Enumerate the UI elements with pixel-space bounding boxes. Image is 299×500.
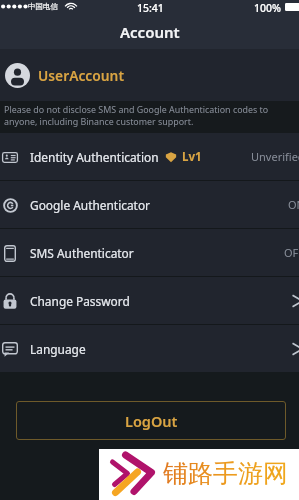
button[interactable]: Change Password [0,277,299,324]
button[interactable]: UserAccount [0,49,299,101]
staticText: 中国电信 [28,2,58,11]
staticText: SMS Authenticator [30,245,134,261]
staticText: OFF [284,245,299,260]
staticText: Language [30,341,86,357]
button[interactable]: LogOut [16,401,286,440]
button[interactable]: Google Authenticator [0,181,299,228]
staticText: UserAccount [38,66,125,85]
button[interactable]: Identity Authentication [0,133,299,180]
staticText: 100% [254,1,281,15]
staticText: Account [120,22,180,42]
button[interactable]: Language [0,325,299,372]
staticText: LogOut [125,411,178,431]
staticText: Google Authenticator [30,197,151,213]
staticText: 铺路手游网 [163,458,288,489]
staticText: Identity Authentication [30,149,159,165]
staticText: Lv1 [182,149,202,165]
staticText: Change Password [30,293,130,309]
staticText: Please do not disclose SMS and Google Au… [4,103,269,127]
button[interactable]: SMS Authenticator [0,229,299,276]
staticText: ON [288,197,299,212]
staticText: 15:41 [137,1,164,15]
staticText: Unverified [251,149,299,164]
